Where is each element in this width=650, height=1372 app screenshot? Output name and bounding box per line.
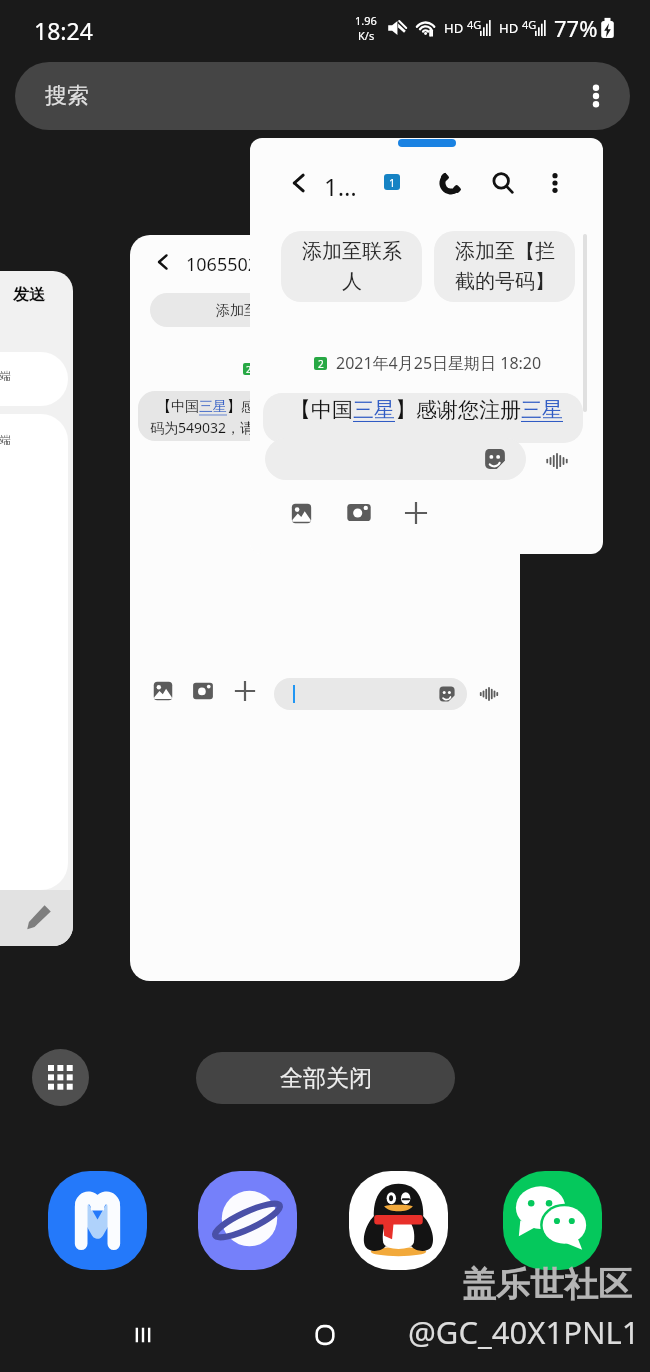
staticText: 2 (318, 357, 324, 370)
button[interactable]: Search (490, 170, 516, 196)
staticText: K/s (358, 28, 375, 43)
staticText: 发送 (13, 285, 45, 305)
button[interactable]: 添加至联系人 (281, 231, 422, 302)
button[interactable]: Recents (113, 1310, 173, 1360)
staticText: HD (499, 19, 519, 37)
button[interactable]: Back (152, 251, 174, 273)
button[interactable]: Camera (346, 501, 372, 524)
staticText: 4G (522, 17, 537, 32)
staticText: 77% (554, 13, 598, 43)
button[interactable]: 发送 (0, 271, 73, 946)
staticText: 添加至联系人 (297, 239, 407, 294)
staticText: 4G (467, 17, 482, 32)
button[interactable]: 添加至【拦截的号码】 (434, 231, 575, 302)
button[interactable]: Home (295, 1310, 355, 1360)
button[interactable]: App icon (198, 1171, 297, 1270)
button[interactable]: Back (286, 170, 312, 196)
button[interactable]: App drawer (32, 1049, 89, 1106)
staticText: 【中国 (157, 398, 199, 416)
staticText: 添加至【拦截的号码】 (450, 239, 560, 294)
button[interactable]: App icon (48, 1171, 147, 1270)
staticText: 2021年4月25日星期日 18:20 (336, 352, 542, 374)
staticText: 三星 (199, 398, 227, 416)
button[interactable]: Camera (192, 680, 214, 702)
staticText: 18:24 (34, 15, 93, 46)
staticText: 】感谢您 (227, 398, 283, 416)
staticText: 盖乐世社区 (462, 1263, 632, 1306)
button[interactable]: App icon (503, 1171, 602, 1270)
button[interactable]: Gallery (290, 502, 313, 525)
staticText: HD (444, 19, 464, 37)
button[interactable]: Gallery (152, 680, 174, 702)
button[interactable]: 搜索 (15, 62, 630, 130)
staticText: @GC_40X1PNL1 (408, 1311, 640, 1353)
button[interactable]: 中国电信客服端 (0, 352, 68, 406)
button[interactable] (265, 438, 526, 480)
staticText: 10655022 (186, 252, 269, 277)
button[interactable]: 全部关闭 (196, 1052, 455, 1104)
button[interactable]: 中国移动客服端 (0, 414, 68, 890)
staticText: 码为549032，请 (150, 418, 255, 437)
button[interactable]: More options (578, 78, 614, 114)
staticText: 【中国 (290, 397, 353, 423)
staticText: 搜索 (45, 82, 89, 110)
staticText: 添加至联系人 (216, 302, 290, 320)
button[interactable]: Back (250, 138, 603, 554)
button[interactable]: Call (438, 170, 464, 196)
staticText: 1.96 (355, 13, 377, 28)
staticText: 全部关闭 (280, 1064, 372, 1093)
button[interactable]: Voice input (478, 683, 500, 705)
staticText: 2 (246, 363, 252, 375)
staticText: 1 (389, 175, 396, 190)
button[interactable]: Back (130, 235, 520, 981)
button[interactable]: App icon (349, 1171, 448, 1270)
button[interactable]: More options (542, 170, 568, 196)
staticText: 】感谢您注册 (395, 397, 521, 423)
staticText: 三星 (521, 397, 563, 423)
button[interactable]: Add (404, 501, 428, 525)
button[interactable] (274, 678, 467, 710)
button[interactable]: Voice input (544, 448, 570, 474)
staticText: 中国移动客服端 (0, 433, 11, 447)
staticText: 1… (324, 170, 357, 203)
staticText: 三星 (353, 397, 395, 423)
button[interactable]: Add (234, 680, 256, 702)
staticText: 中国电信客服端 (0, 369, 11, 383)
